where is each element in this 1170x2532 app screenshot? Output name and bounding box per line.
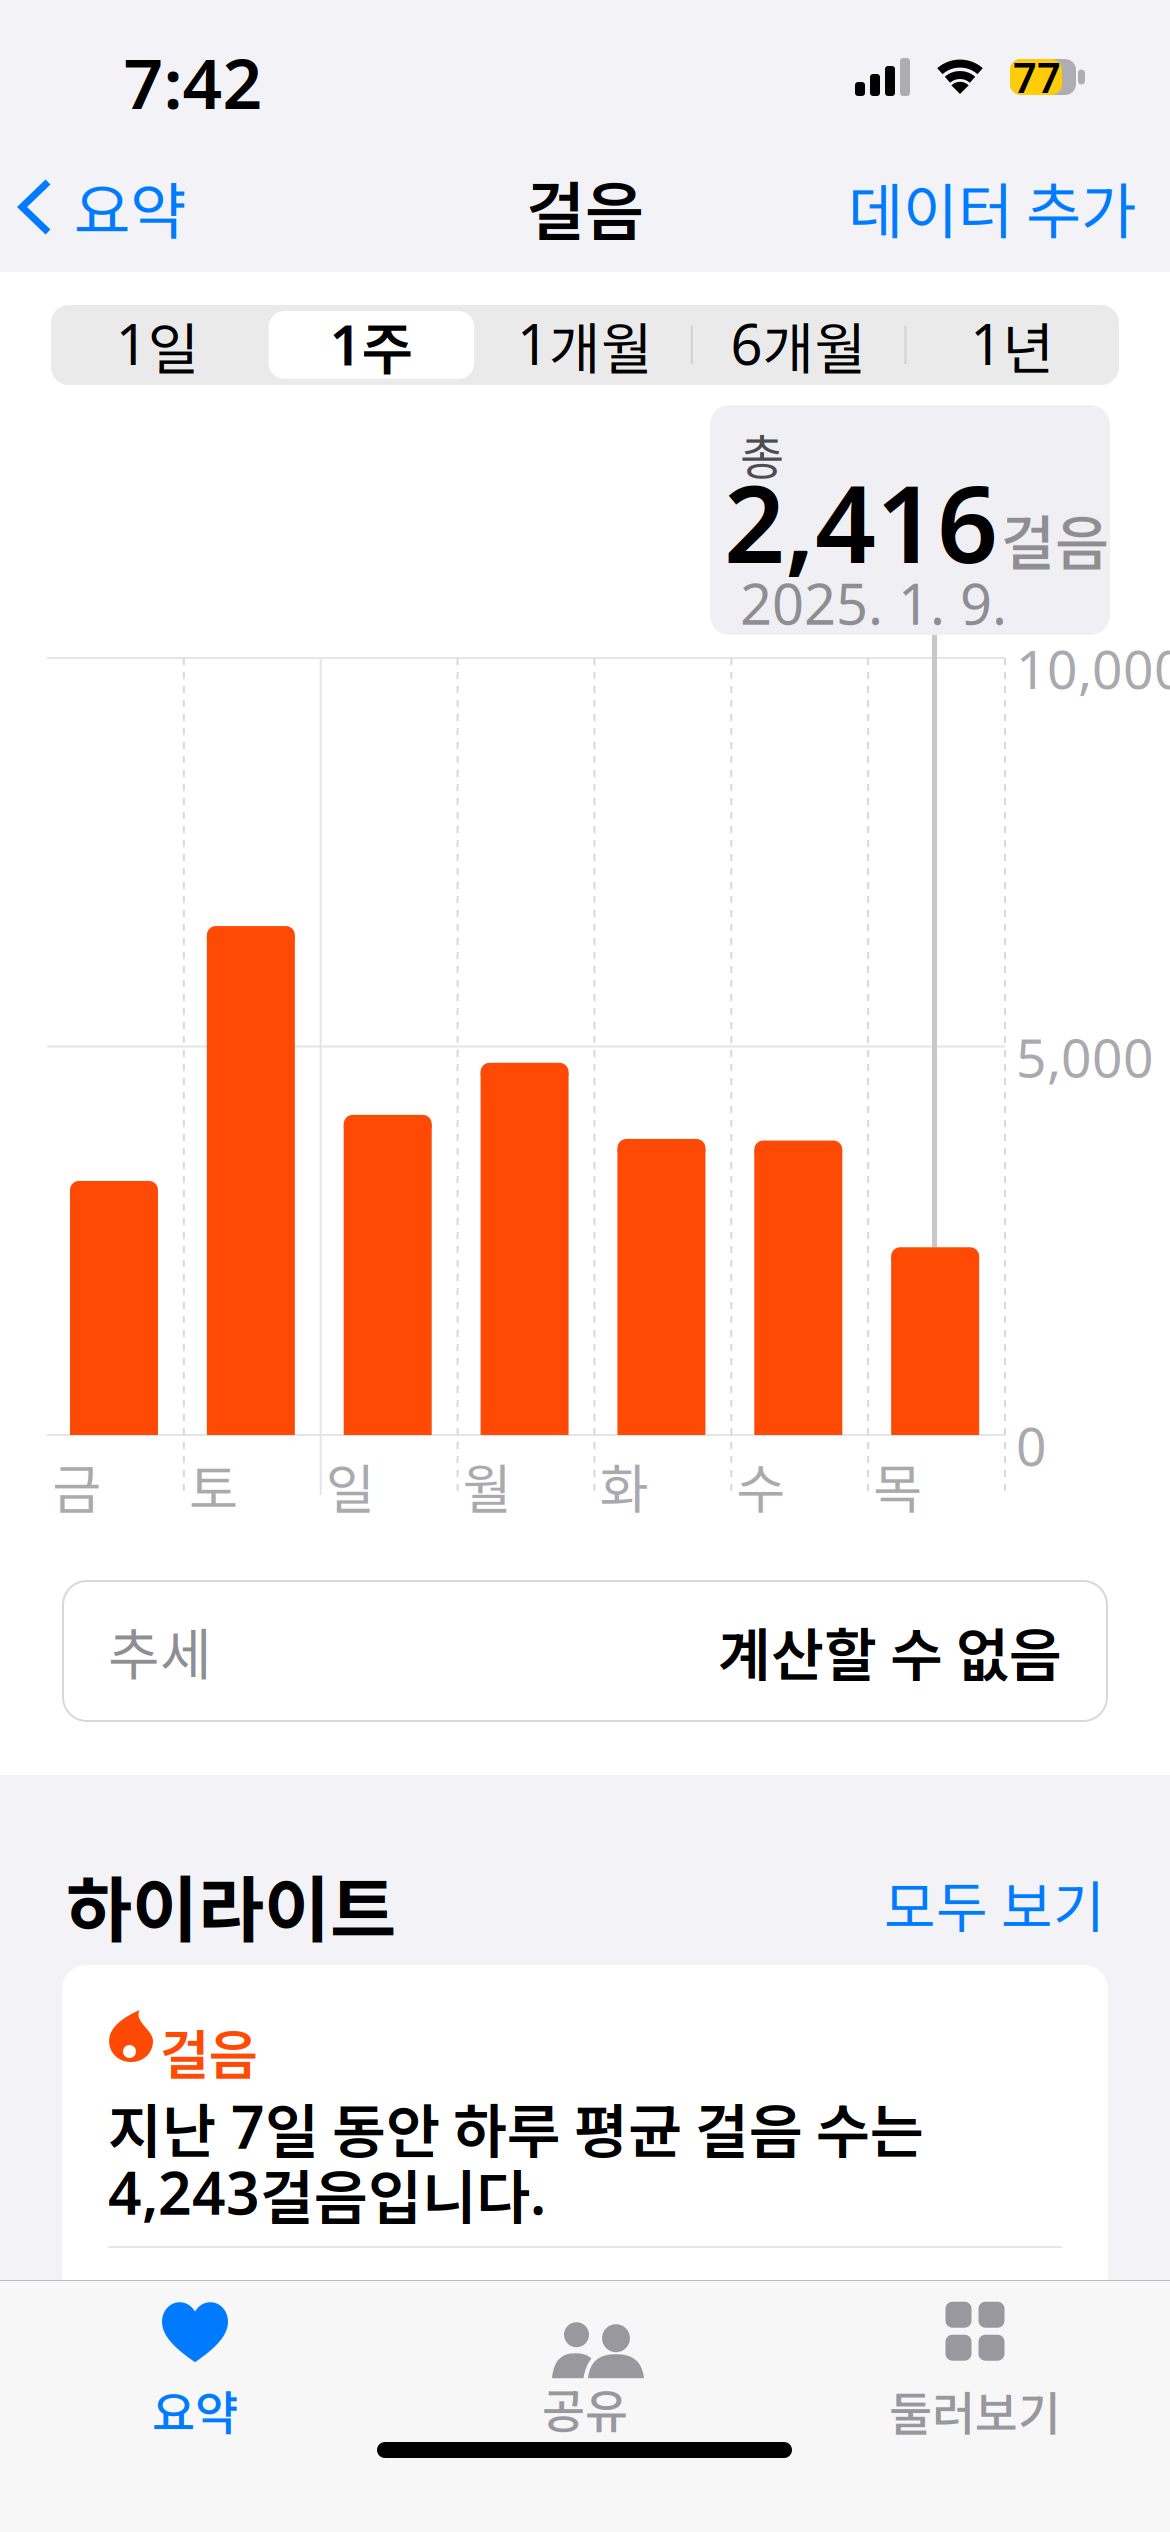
button[interactable]: 1개월 xyxy=(478,305,692,385)
button[interactable]: 데이터 추가 xyxy=(848,164,1136,250)
staticText: 모두 보기 xyxy=(884,1863,1105,1944)
staticText: 목 xyxy=(873,1447,922,1524)
staticText: 1년 xyxy=(970,304,1054,386)
button[interactable]: 모두 보기 xyxy=(884,1863,1105,1944)
staticText: 1일 xyxy=(116,304,200,386)
staticText: 둘러보기 xyxy=(889,2377,1061,2444)
button[interactable]: 1일 xyxy=(51,305,265,385)
button[interactable]: 6개월 xyxy=(692,305,905,385)
button[interactable]: 추세 xyxy=(62,1580,1108,1722)
staticText: 요약 xyxy=(152,2376,238,2444)
staticText: 6개월 xyxy=(731,304,867,386)
staticText: 일 xyxy=(326,1447,375,1524)
staticText: 1주 xyxy=(329,304,413,386)
staticText: 걸음 xyxy=(1001,496,1109,581)
staticText: 공유 xyxy=(542,2374,628,2442)
staticText: 월 xyxy=(463,1447,512,1524)
staticText: 토 xyxy=(189,1447,238,1524)
staticText: 금 xyxy=(52,1447,101,1524)
staticText: 4,243걸음입니다. xyxy=(108,2151,546,2236)
staticText: 걸음 xyxy=(160,2013,258,2090)
staticText: 데이터 추가 xyxy=(848,164,1136,250)
staticText: 하이라이트 xyxy=(66,1853,396,1957)
staticText: 총 xyxy=(740,419,784,488)
staticText: 1개월 xyxy=(517,304,653,386)
staticText: 2025. 1. 9. xyxy=(740,565,1007,641)
button[interactable]: 요약 xyxy=(22,163,186,251)
staticText: 화 xyxy=(599,1447,648,1524)
staticText: 5,000 xyxy=(1016,1020,1154,1093)
staticText: 계산할 수 없음 xyxy=(718,1609,1062,1692)
staticText: 요약 xyxy=(74,163,186,251)
button[interactable]: 요약 xyxy=(55,2308,335,2438)
staticText: 수 xyxy=(736,1447,785,1524)
staticText: 0 xyxy=(1016,1409,1047,1482)
staticText: 추세 xyxy=(108,1610,212,1692)
staticText: 걸음 xyxy=(526,161,644,253)
button[interactable]: 1년 xyxy=(905,305,1119,385)
staticText: 7:42 xyxy=(123,35,262,129)
button[interactable]: 둘러보기 xyxy=(835,2308,1115,2438)
button[interactable]: 1주 xyxy=(265,305,478,385)
staticText: 10,000 xyxy=(1016,632,1170,705)
staticText: 2,416 xyxy=(724,449,998,594)
staticText: 77 xyxy=(1013,49,1061,105)
button[interactable]: 공유 xyxy=(445,2308,725,2438)
staticText: 지난 7일 동안 하루 평균 걸음 수는 xyxy=(108,2085,924,2170)
